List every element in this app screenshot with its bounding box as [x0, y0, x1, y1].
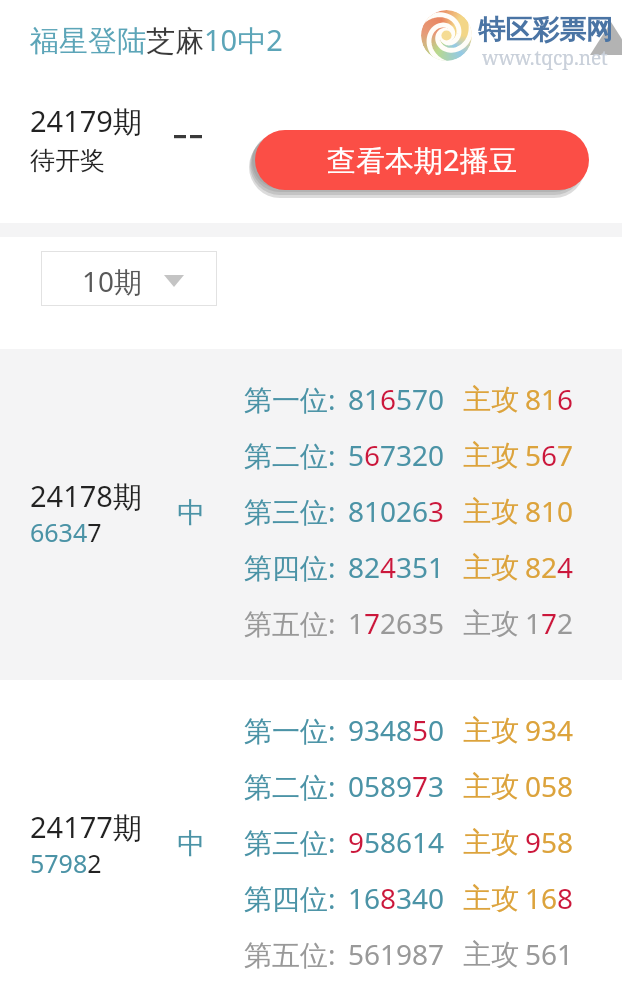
staticText: 934	[525, 711, 574, 749]
staticText: 主攻	[463, 382, 519, 417]
staticText: 24177期	[30, 807, 142, 847]
staticText: 查看本期2播豆	[327, 140, 518, 180]
staticText: 第四位:	[244, 879, 336, 917]
staticText: 816	[525, 380, 574, 418]
staticText: 第二位:	[244, 767, 336, 805]
staticText: 第一位:	[244, 711, 336, 749]
staticText: 24179期	[30, 101, 142, 141]
staticText: 待开奖	[30, 145, 105, 176]
staticText: 第二位:	[244, 436, 336, 474]
staticText: 主攻	[463, 494, 519, 529]
staticText: www.tqcp.net	[482, 45, 608, 71]
staticText: 810263	[348, 492, 445, 530]
staticText: 第五位:	[244, 604, 336, 642]
staticText: 168340	[348, 879, 445, 917]
staticText: 168	[525, 879, 574, 917]
staticText: 中	[177, 826, 205, 861]
staticText: 958614	[348, 823, 445, 861]
staticText: 主攻	[463, 881, 519, 916]
staticText: 主攻	[463, 438, 519, 473]
staticText: 第五位:	[244, 935, 336, 973]
staticText: 561	[525, 935, 574, 973]
staticText: 主攻	[463, 825, 519, 860]
button[interactable]: 10期	[41, 251, 217, 306]
staticText: 567	[525, 436, 574, 474]
staticText: 第三位:	[244, 823, 336, 861]
staticText: 第一位:	[244, 380, 336, 418]
staticText: 567320	[348, 436, 445, 474]
staticText: 福星登陆芝麻10中2	[30, 20, 283, 60]
staticText: 24178期	[30, 476, 142, 516]
button[interactable]: 查看本期2播豆	[255, 130, 589, 190]
staticText: 主攻	[463, 713, 519, 748]
staticText: 824351	[348, 548, 445, 586]
staticText: 主攻	[463, 550, 519, 585]
staticText: 中	[177, 495, 205, 530]
staticText: 172635	[348, 604, 445, 642]
staticText: 10期	[82, 262, 143, 300]
staticText: 824	[525, 548, 574, 586]
staticText: 主攻	[463, 937, 519, 972]
staticText: 934850	[348, 711, 445, 749]
staticText: 主攻	[463, 606, 519, 641]
staticText: 816570	[348, 380, 445, 418]
staticText: 058973	[348, 767, 445, 805]
staticText: 958	[525, 823, 574, 861]
staticText: 810	[525, 492, 574, 530]
staticText: 特区彩票网	[478, 13, 613, 47]
staticText: 561987	[348, 935, 445, 973]
staticText: 57982	[30, 846, 102, 880]
staticText: 172	[525, 604, 574, 642]
staticText: 66347	[30, 515, 102, 549]
staticText: 058	[525, 767, 574, 805]
staticText: 主攻	[463, 769, 519, 804]
staticText: 第四位:	[244, 548, 336, 586]
staticText: 第三位:	[244, 492, 336, 530]
